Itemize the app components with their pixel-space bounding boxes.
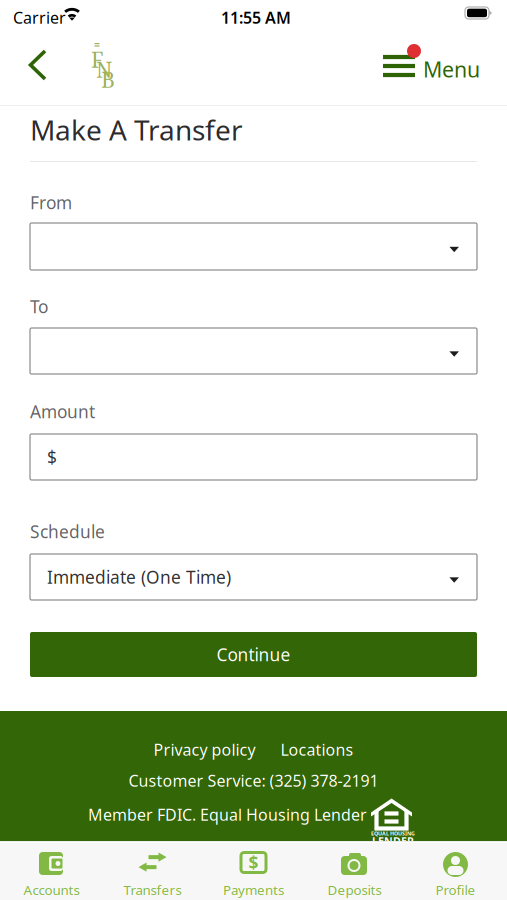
staticText: Continue <box>216 643 290 666</box>
staticText: Customer Service: (325) 378-2191 <box>128 770 378 791</box>
button[interactable]: Accounts <box>1 843 102 900</box>
staticText: Locations <box>280 739 353 760</box>
button[interactable]: $ <box>30 434 477 480</box>
button[interactable]: Transfers <box>102 843 203 900</box>
staticText: Amount <box>30 400 95 423</box>
button[interactable]: Menu <box>383 42 495 92</box>
staticText: Menu <box>423 55 480 83</box>
staticText: LENDER <box>372 834 414 848</box>
staticText: EQUAL HOUSING <box>371 830 415 837</box>
button[interactable] <box>30 223 477 270</box>
button[interactable]: Back <box>10 36 66 94</box>
button[interactable] <box>30 328 477 374</box>
button[interactable]: Immediate (One Time) <box>30 554 477 600</box>
button[interactable]: $ <box>203 843 304 900</box>
staticText: From <box>30 191 72 214</box>
staticText: Privacy policy <box>153 739 255 760</box>
staticText: Profile <box>435 881 475 899</box>
staticText: Member FDIC. Equal Housing Lender <box>88 804 367 825</box>
staticText: Deposits <box>327 881 381 899</box>
staticText: Accounts <box>23 881 79 899</box>
staticText: Schedule <box>30 520 105 543</box>
button[interactable]: Locations <box>280 739 353 760</box>
staticText: 11:55 AM <box>221 7 291 28</box>
staticText: Carrier <box>13 7 66 28</box>
staticText: Payments <box>223 881 284 899</box>
button[interactable]: Continue <box>30 632 477 677</box>
staticText: F <box>91 45 104 74</box>
button[interactable]: Profile <box>405 843 506 900</box>
staticText: $ <box>47 445 57 468</box>
button[interactable]: Privacy policy <box>153 739 255 760</box>
staticText: Make A Transfer <box>30 111 243 148</box>
staticText: Transfers <box>123 881 181 899</box>
button[interactable]: Deposits <box>304 843 405 900</box>
staticText: To <box>30 295 48 318</box>
staticText: $ <box>248 851 258 874</box>
staticText: Immediate (One Time) <box>47 565 231 588</box>
staticText: N <box>96 55 112 84</box>
staticText: B <box>101 65 115 94</box>
